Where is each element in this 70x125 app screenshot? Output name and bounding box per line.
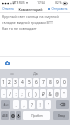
staticText: Комментарий (18, 7, 43, 12)
staticText: ) (35, 91, 37, 97)
staticText: 82 % (55, 1, 62, 5)
button[interactable]: Отправить (48, 7, 68, 11)
button[interactable]: ' (45, 100, 51, 109)
staticText: Отмена (2, 7, 14, 11)
staticText: MTS RUS (12, 1, 25, 5)
button[interactable]: ) (33, 89, 39, 98)
staticText: ; (21, 91, 23, 97)
button[interactable]: Да (24, 69, 47, 78)
staticText: ? (31, 102, 33, 108)
staticText: 2 (8, 79, 11, 86)
button[interactable]: Пробел (23, 111, 50, 120)
staticText: Ввод (58, 114, 65, 118)
button[interactable]: 3 (13, 78, 18, 87)
staticText: & (48, 91, 52, 97)
button[interactable]: ( (26, 89, 32, 98)
button[interactable]: Ввод (53, 111, 69, 120)
button[interactable]: Backspace (56, 100, 69, 109)
button[interactable]: 1 (1, 78, 6, 87)
button[interactable]: ! (37, 100, 43, 109)
button[interactable]: 8 (47, 78, 53, 87)
staticText: ₽ (42, 91, 45, 97)
button[interactable]: Отмена (2, 7, 14, 11)
button[interactable]: , (21, 100, 27, 109)
staticText: ( (28, 91, 30, 97)
button[interactable]: 0 (61, 78, 67, 87)
staticText: / (9, 91, 11, 97)
staticText: @ (55, 91, 59, 97)
staticText: 7 (42, 79, 45, 86)
button[interactable]: . (13, 100, 19, 109)
button[interactable]: #+= (1, 100, 10, 109)
button[interactable]: 6 (33, 78, 39, 87)
staticText: ' (48, 102, 49, 108)
staticText: 8 (49, 79, 52, 86)
button[interactable]: 7 (40, 78, 46, 87)
staticText: 6 (35, 79, 38, 86)
staticText: ! (39, 102, 41, 108)
staticText: , (23, 102, 25, 108)
staticText: - (3, 91, 5, 97)
button[interactable]: " (61, 89, 67, 98)
staticText: 1 (2, 79, 5, 86)
button[interactable]: ₽ (40, 89, 46, 98)
staticText: Да (33, 71, 38, 76)
staticText: Круглый свет солнца на смуглой гранёной (2, 14, 69, 19)
staticText: АБВ (2, 114, 8, 118)
button[interactable]: 2 (7, 78, 12, 87)
button[interactable]: - (1, 89, 6, 98)
staticText: #+= (3, 103, 9, 107)
staticText: " (63, 91, 65, 97)
button[interactable]: ; (19, 89, 25, 98)
button[interactable]: 5 (26, 78, 32, 87)
staticText: Пробел (31, 114, 43, 118)
button[interactable]: «» (0, 69, 24, 78)
button[interactable]: Dictate (16, 111, 21, 120)
button[interactable]: / (7, 89, 12, 98)
button[interactable]: АБВ (1, 111, 9, 120)
staticText: «» (10, 71, 14, 76)
staticText: . (15, 102, 17, 108)
button[interactable]: & (47, 89, 53, 98)
staticText: Как то не совпадает (2, 26, 69, 31)
button[interactable]: 9 (54, 78, 60, 87)
staticText: : (15, 91, 17, 97)
button[interactable]: 4 (19, 78, 25, 87)
staticText: складке видной грядами ВТТ (2, 20, 69, 25)
staticText: 0 (63, 79, 66, 86)
staticText: Отправить (51, 7, 68, 11)
staticText: 3 (14, 79, 17, 86)
button[interactable]: ? (29, 100, 35, 109)
staticText: 5 (28, 79, 31, 86)
button[interactable]: Change keyboard (10, 111, 15, 120)
staticText: 9 (56, 79, 59, 86)
button[interactable]: @ (54, 89, 60, 98)
staticText: 4 (21, 79, 24, 86)
button[interactable]: Attach photo (5, 61, 10, 65)
staticText: 17:54 (37, 1, 45, 5)
button[interactable]: : (13, 89, 18, 98)
